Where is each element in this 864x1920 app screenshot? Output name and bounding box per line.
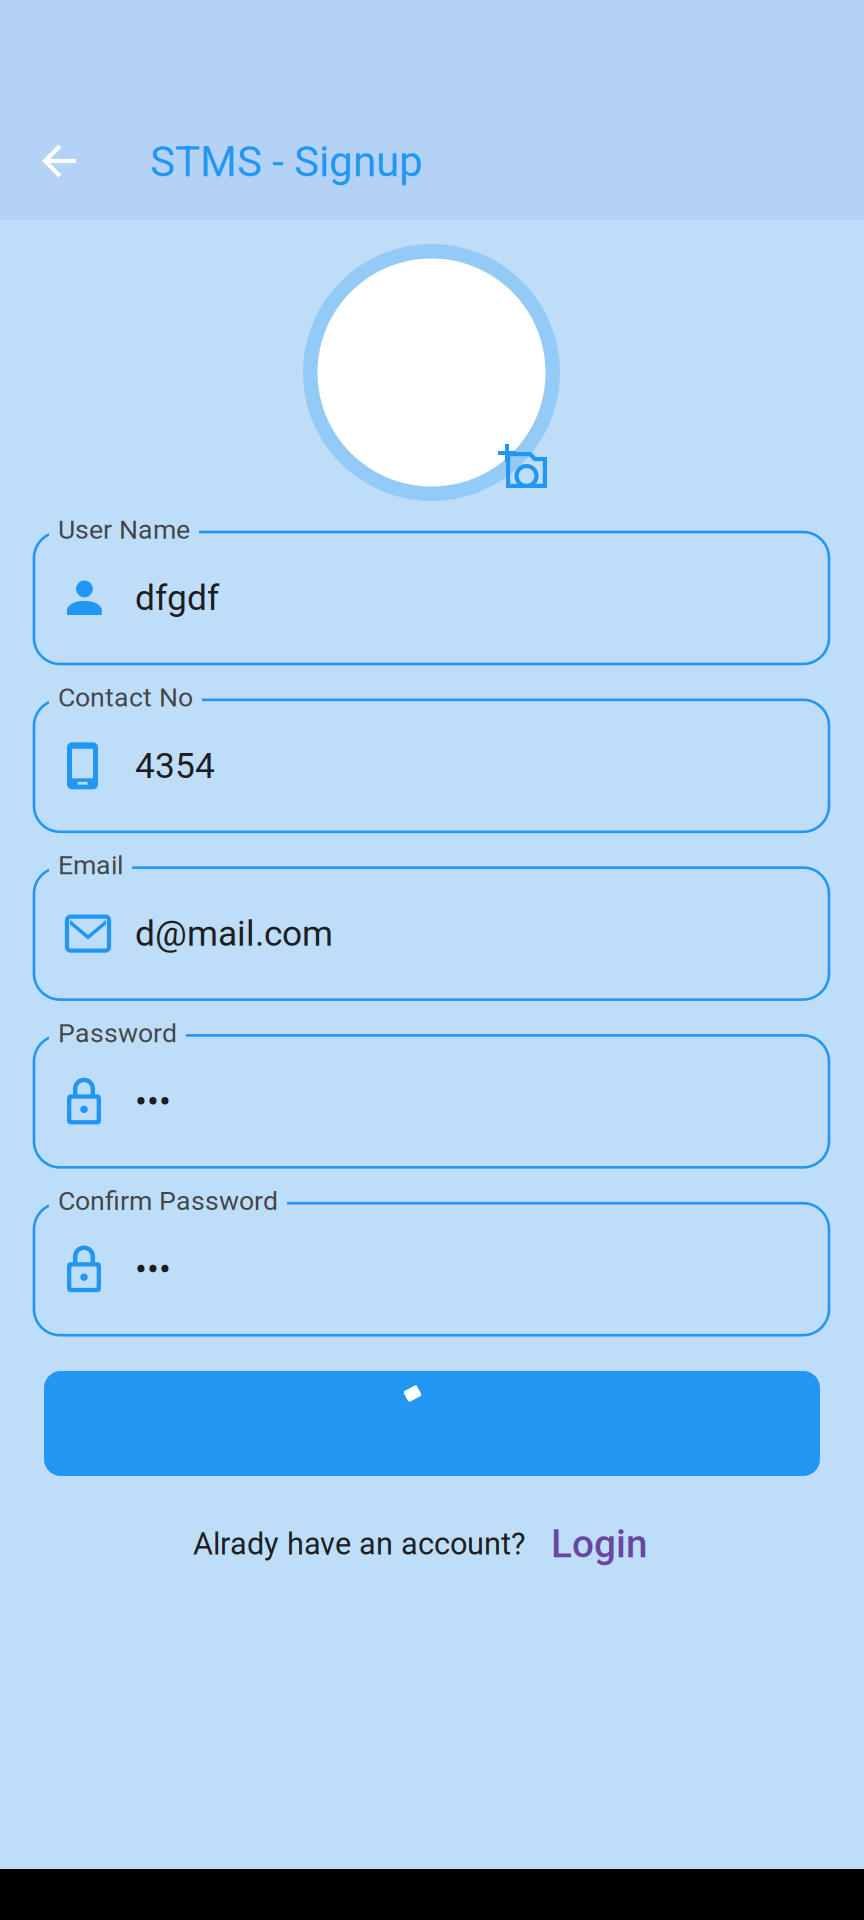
button[interactable]: Add profile photo — [303, 244, 560, 510]
staticText: 4354 — [135, 745, 215, 786]
button[interactable]: Sign up — [44, 1371, 820, 1476]
staticText: Password — [58, 1017, 177, 1049]
button[interactable]: Back — [19, 121, 99, 201]
button[interactable]: Login — [525, 1515, 648, 1573]
staticText: d@mail.com — [135, 913, 333, 954]
staticText: Login — [551, 1521, 648, 1567]
staticText: User Name — [58, 514, 190, 545]
staticText: Alrady have an account? — [193, 1526, 525, 1562]
staticText: STMS - Signup — [150, 137, 423, 187]
staticText: Email — [58, 850, 123, 881]
staticText: ••• — [135, 1248, 171, 1290]
staticText: Contact No — [58, 682, 193, 713]
staticText: ••• — [135, 1081, 171, 1122]
staticText: Confirm Password — [58, 1185, 278, 1216]
staticText: dfgdf — [135, 577, 219, 619]
